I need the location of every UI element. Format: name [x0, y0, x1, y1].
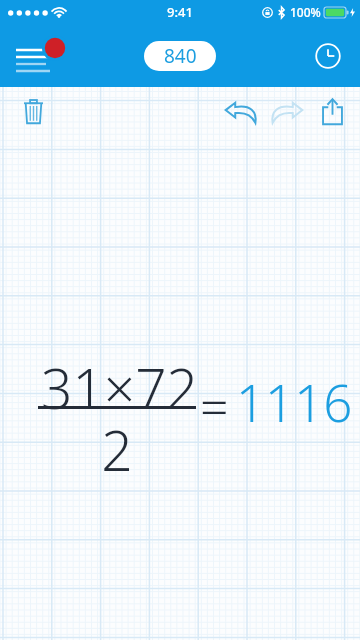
- button[interactable]: Share: [310, 89, 354, 133]
- staticText: 100%: [290, 4, 321, 20]
- staticText: 1116: [236, 367, 353, 436]
- staticText: 31×72: [41, 350, 199, 425]
- button[interactable]: History: [310, 38, 346, 74]
- button[interactable]: 840: [144, 41, 216, 71]
- staticText: 840: [164, 43, 197, 69]
- button[interactable]: Menu, 1 notification: [10, 33, 66, 79]
- button[interactable]: Delete: [14, 92, 52, 130]
- staticText: 9:41: [167, 3, 193, 21]
- staticText: 2: [38, 412, 196, 487]
- button[interactable]: Undo: [218, 88, 264, 134]
- staticText: =: [200, 372, 229, 440]
- button[interactable]: Redo: [264, 88, 310, 134]
